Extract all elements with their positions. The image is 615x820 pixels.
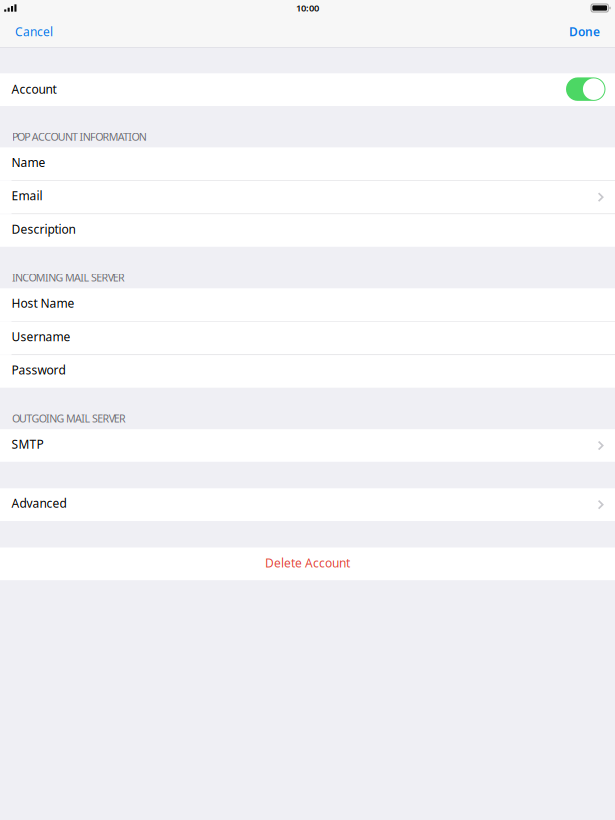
- staticText: Account: [12, 81, 57, 97]
- button[interactable]: Password: [0, 355, 615, 388]
- button[interactable]: Host Name: [0, 288, 615, 321]
- button[interactable]: Username: [0, 322, 615, 354]
- button[interactable]: Account enabled: [566, 77, 605, 101]
- button[interactable]: Advanced: [0, 488, 615, 521]
- button[interactable]: Done: [557, 16, 615, 47]
- staticText: 10:00: [296, 2, 319, 14]
- staticText: POP ACCOUNT INFORMATION: [12, 129, 147, 144]
- staticText: Host Name: [12, 295, 75, 311]
- staticText: Delete Account: [265, 555, 350, 571]
- staticText: INCOMING MAIL SERVER: [12, 270, 125, 284]
- button[interactable]: Cancel: [0, 16, 65, 47]
- staticText: Name: [12, 154, 46, 170]
- staticText: Done: [569, 23, 600, 39]
- staticText: OUTGOING MAIL SERVER: [12, 411, 126, 425]
- staticText: Password: [12, 362, 66, 378]
- staticText: Advanced: [12, 495, 67, 511]
- button[interactable]: Account: [0, 73, 615, 106]
- button[interactable]: SMTP: [0, 429, 615, 462]
- staticText: Username: [12, 329, 71, 344]
- button[interactable]: Name: [0, 147, 615, 180]
- button[interactable]: Delete Account: [0, 547, 615, 580]
- staticText: Description: [12, 221, 76, 237]
- staticText: Cancel: [15, 23, 53, 39]
- staticText: SMTP: [12, 436, 44, 452]
- button[interactable]: Email: [0, 181, 615, 213]
- staticText: Email: [12, 188, 43, 204]
- button[interactable]: Description: [0, 214, 615, 247]
